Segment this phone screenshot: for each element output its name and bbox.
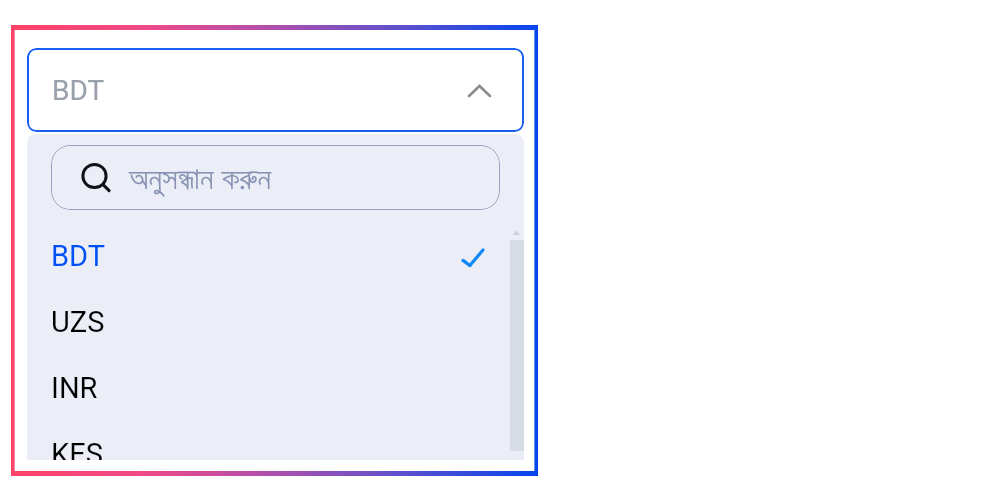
staticText: BDT	[51, 239, 106, 273]
staticText: KES	[51, 437, 103, 460]
staticText: অনুসন্ধান করুন	[129, 156, 272, 198]
button[interactable]: UZS	[27, 289, 524, 355]
other: Search	[81, 163, 113, 195]
button[interactable]: BDT	[27, 223, 524, 289]
button[interactable]: BDT	[27, 48, 524, 132]
button[interactable]: Search	[51, 145, 500, 210]
staticText: BDT	[52, 74, 105, 107]
button[interactable]: KES	[27, 421, 524, 460]
staticText: INR	[51, 371, 98, 405]
other: Collapse	[469, 86, 490, 96]
staticText: UZS	[51, 305, 105, 339]
button[interactable]: INR	[27, 355, 524, 421]
